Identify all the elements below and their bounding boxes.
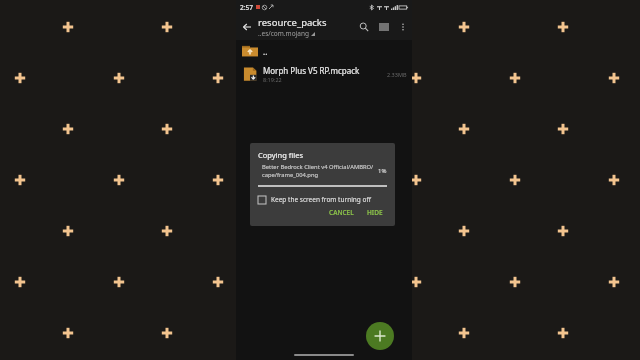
staticText: ..es/com.mojang — [258, 29, 309, 38]
staticText: 8:19:22 — [263, 76, 282, 83]
staticText: CANCEL — [329, 208, 354, 217]
staticText: Better Bedrock Client v4 Official/AMBRO/ — [262, 163, 374, 171]
button[interactable]: CANCEL — [325, 206, 358, 219]
staticText: 2:57 — [240, 3, 253, 12]
staticText: Copying files — [258, 150, 303, 160]
button[interactable]: Keep the screen from turning off — [258, 195, 387, 204]
button[interactable]: More options — [394, 18, 412, 36]
staticText: Keep the screen from turning off — [271, 195, 371, 204]
button[interactable]: Morph Plus V5 RP.mcpack — [236, 62, 412, 86]
button[interactable]: Back — [236, 16, 258, 38]
button[interactable]: HIDE — [363, 206, 387, 219]
staticText: HIDE — [367, 208, 383, 217]
staticText: 1% — [378, 167, 387, 175]
button[interactable]: Search — [354, 17, 374, 37]
staticText: resource_packs — [258, 16, 327, 29]
button[interactable]: View mode — [374, 17, 394, 37]
button[interactable]: .. — [236, 40, 412, 62]
staticText: 2.33MB — [387, 71, 407, 78]
button[interactable]: Add — [366, 322, 394, 350]
staticText: .. — [263, 46, 268, 57]
staticText: Morph Plus V5 RP.mcpack — [263, 65, 360, 76]
staticText: cape/frame_004.png — [262, 171, 319, 179]
